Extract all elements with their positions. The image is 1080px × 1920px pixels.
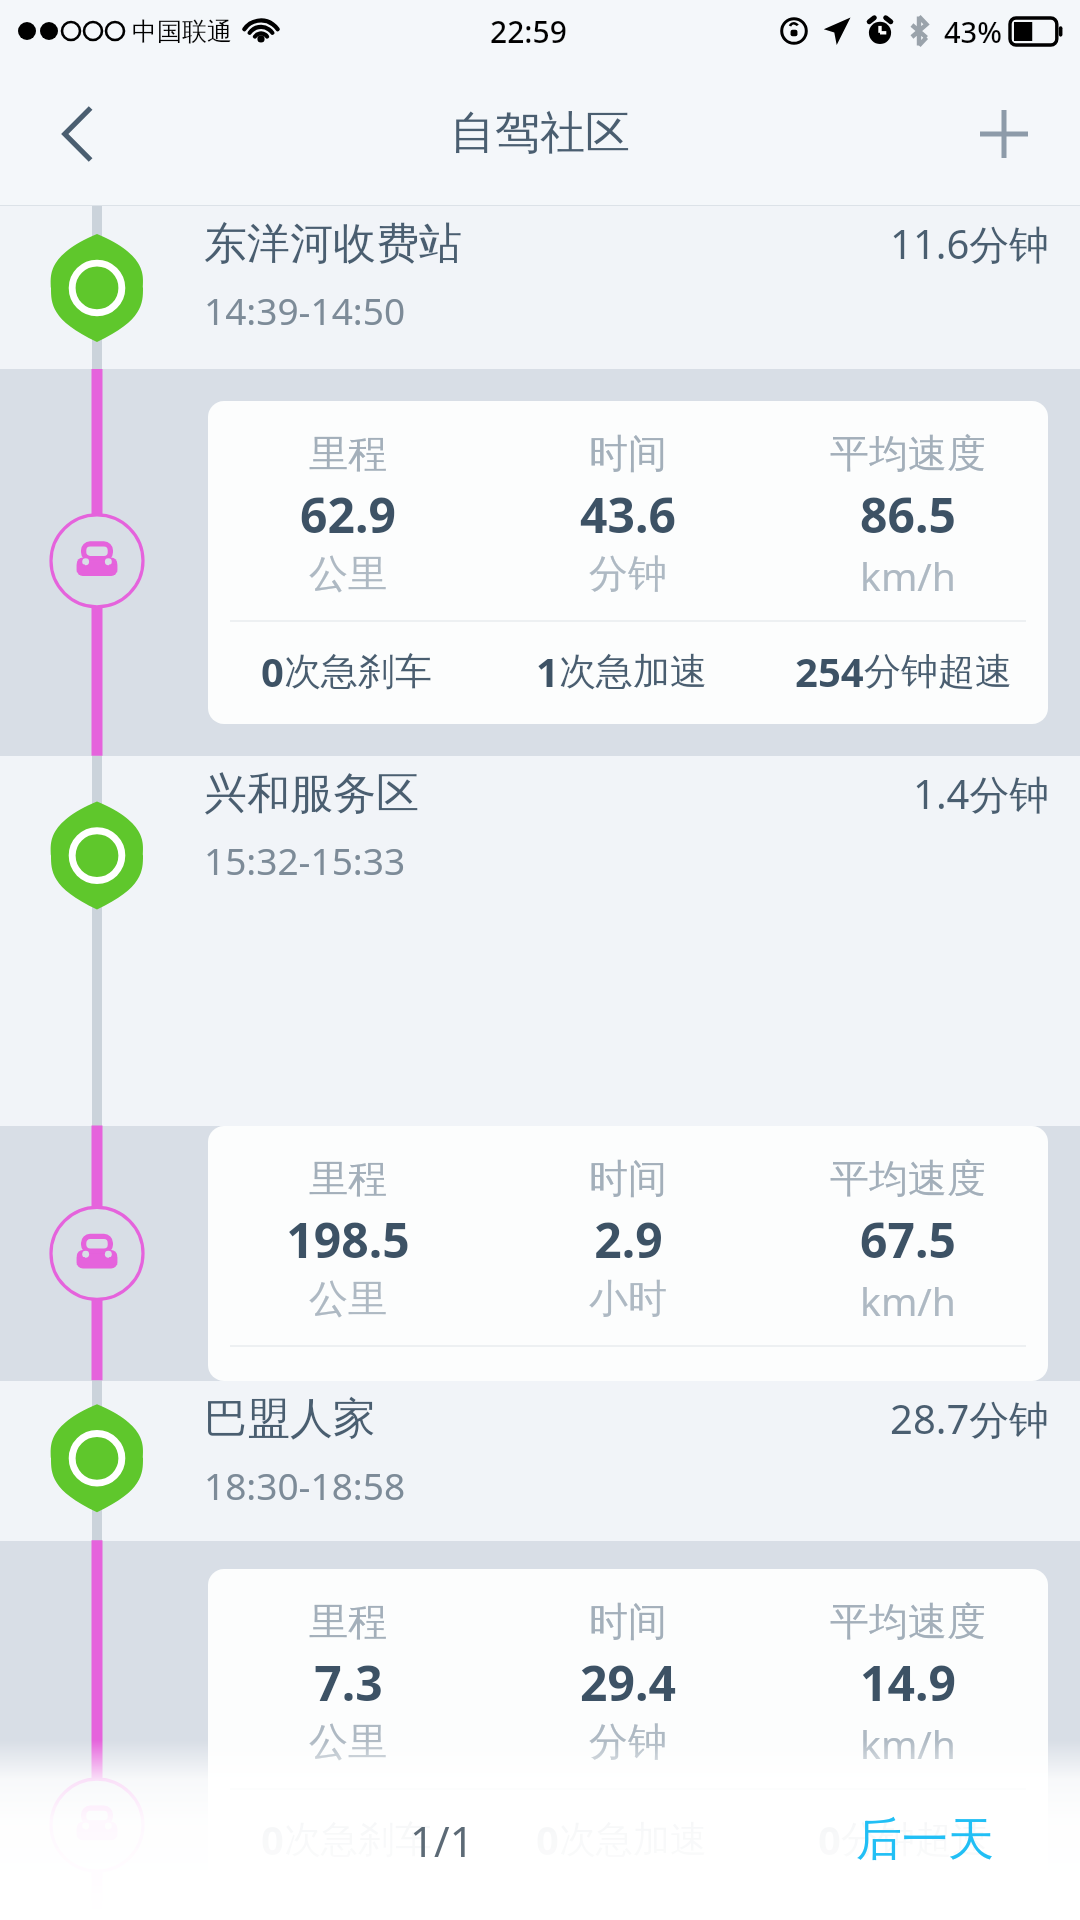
staticText: 里程: [309, 429, 387, 478]
button[interactable]: 后一天: [844, 1799, 1006, 1881]
staticText: 平均速度: [830, 429, 986, 478]
staticText: 11.6分钟: [890, 216, 1050, 271]
staticText: 67.5: [860, 1207, 956, 1272]
staticText: 里程: [309, 1154, 387, 1203]
staticText: 自驾社区: [450, 105, 630, 162]
staticText: 22:59: [490, 11, 567, 52]
staticText: 时间: [589, 429, 667, 478]
staticText: 62.9: [300, 482, 396, 547]
staticText: 后一天: [856, 1811, 994, 1869]
staticText: km/h: [860, 1717, 956, 1770]
staticText: 分钟: [589, 1717, 667, 1766]
staticText: 分钟超速: [841, 1816, 989, 1863]
button[interactable]: 里程: [208, 1126, 1048, 1381]
staticText: 分钟超速: [864, 648, 1012, 695]
staticText: 29.4: [580, 1650, 676, 1715]
staticText: 东洋河收费站: [204, 217, 462, 271]
staticText: 时间: [589, 1597, 667, 1646]
staticText: 0: [261, 644, 284, 698]
staticText: 1/1: [410, 1812, 474, 1869]
staticText: 1: [536, 644, 559, 698]
staticText: 次急刹车: [284, 1816, 432, 1863]
staticText: 43.6: [580, 482, 676, 547]
staticText: km/h: [860, 1274, 956, 1327]
button[interactable]: Back: [40, 96, 116, 172]
staticText: 次急加速: [559, 648, 707, 695]
staticText: 254: [795, 644, 864, 698]
staticText: 14:39-14:50: [204, 285, 406, 335]
staticText: 公里: [309, 549, 387, 598]
staticText: 平均速度: [830, 1597, 986, 1646]
button[interactable]: 1/1: [398, 1800, 486, 1881]
staticText: 28.7分钟: [890, 1391, 1050, 1446]
staticText: 43%: [944, 12, 1002, 51]
staticText: 巴盟人家: [204, 1392, 376, 1446]
staticText: 1.4分钟: [913, 766, 1050, 821]
staticText: 86.5: [860, 482, 956, 547]
staticText: 公里: [309, 1274, 387, 1323]
staticText: 时间: [589, 1154, 667, 1203]
staticText: 兴和服务区: [204, 767, 419, 821]
staticText: 0: [818, 1812, 841, 1866]
button[interactable]: 里程: [208, 401, 1048, 724]
staticText: 0: [536, 1812, 559, 1866]
staticText: 中国联通: [132, 16, 232, 47]
staticText: 分钟: [589, 549, 667, 598]
staticText: 15:32-15:33: [204, 835, 406, 885]
button[interactable]: 东洋河收费站: [0, 206, 1080, 369]
staticText: 198.5: [286, 1207, 410, 1272]
button[interactable]: 兴和服务区: [0, 756, 1080, 1126]
staticText: 次急刹车: [284, 648, 432, 695]
button[interactable]: 里程: [208, 1569, 1048, 1892]
staticText: 小时: [589, 1274, 667, 1323]
staticText: 18:30-18:58: [204, 1460, 406, 1510]
button[interactable]: Add: [966, 96, 1042, 172]
staticText: 2.9: [594, 1207, 663, 1272]
staticText: km/h: [860, 549, 956, 602]
staticText: 14.9: [860, 1650, 956, 1715]
button[interactable]: 巴盟人家: [0, 1381, 1080, 1541]
staticText: 平均速度: [830, 1154, 986, 1203]
staticText: 里程: [309, 1597, 387, 1646]
staticText: 0: [261, 1812, 284, 1866]
staticText: 7.3: [314, 1650, 383, 1715]
staticText: 公里: [309, 1717, 387, 1766]
